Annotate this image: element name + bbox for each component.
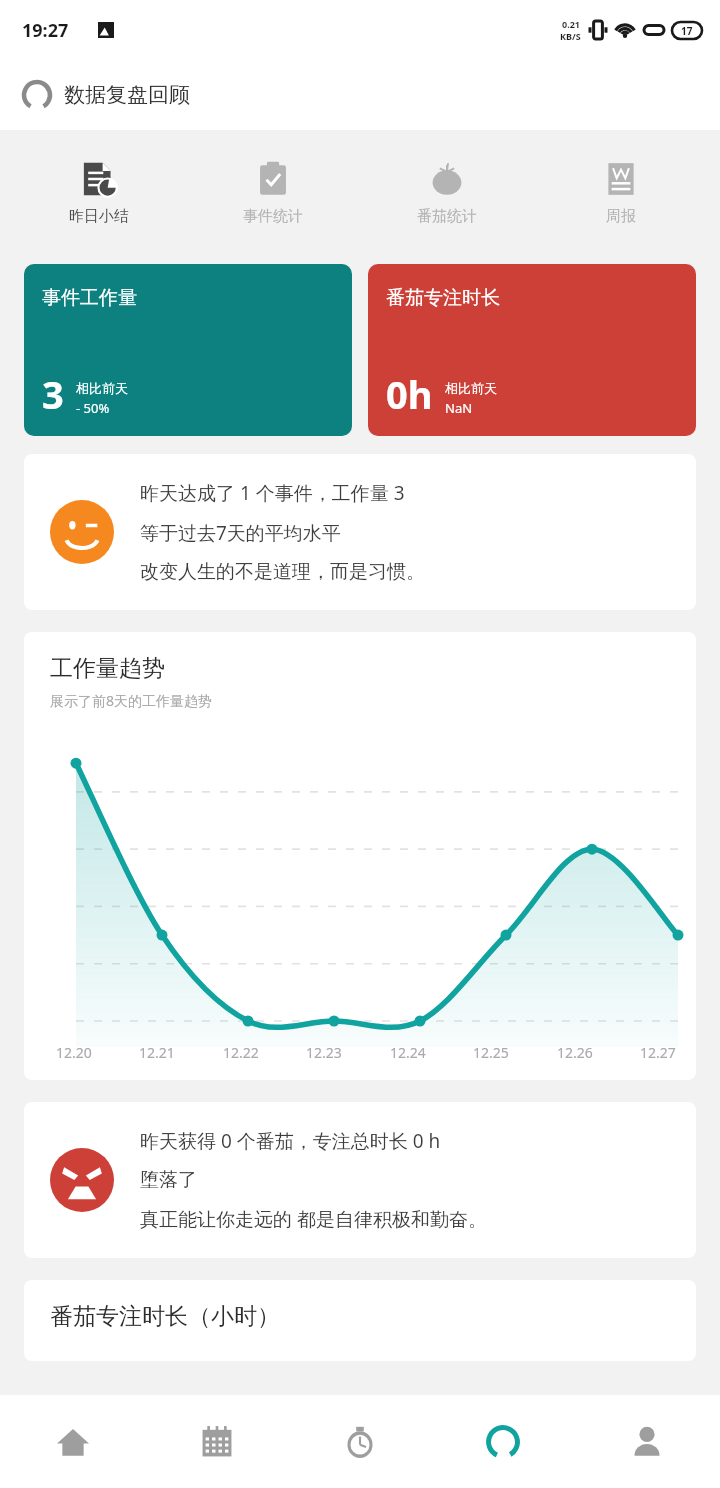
button[interactable]: Profile xyxy=(577,1395,717,1488)
button[interactable]: 昨天达成了 1 个事件，工作量 3 xyxy=(24,454,696,610)
staticText: 12.20 xyxy=(56,1043,92,1062)
staticText: 19:27 xyxy=(22,18,69,43)
staticText: 12.27 xyxy=(640,1043,676,1062)
staticText: 昨天获得 0 个番茄，专注总时长 0 h xyxy=(140,1128,441,1154)
staticText: 番茄统计 xyxy=(417,207,477,226)
staticText: 事件统计 xyxy=(243,207,303,226)
staticText: 17 xyxy=(681,24,693,38)
staticText: 0h xyxy=(386,368,433,420)
staticText: 堕落了 xyxy=(140,1168,197,1192)
staticText: 12.21 xyxy=(139,1043,175,1062)
button[interactable]: Timer xyxy=(290,1395,430,1488)
staticText: 0.21 xyxy=(562,18,580,30)
button[interactable]: 昨天获得 0 个番茄，专注总时长 0 h xyxy=(24,1102,696,1258)
staticText: 12.23 xyxy=(306,1043,342,1062)
button[interactable]: Review xyxy=(433,1395,573,1488)
staticText: KB/S xyxy=(560,30,581,42)
staticText: 周报 xyxy=(606,207,636,226)
staticText: 事件工作量 xyxy=(42,286,137,310)
staticText: 展示了前8天的工作量趋势 xyxy=(50,691,213,710)
button[interactable]: 周报 xyxy=(546,155,696,232)
staticText: 数据复盘回顾 xyxy=(64,82,190,108)
staticText: 相比前天 xyxy=(445,380,497,396)
staticText: NaN xyxy=(445,399,473,417)
staticText: 12.22 xyxy=(223,1043,259,1062)
staticText: 12.26 xyxy=(557,1043,593,1062)
staticText: 番茄专注时长 xyxy=(386,286,500,310)
button[interactable]: Home xyxy=(3,1395,143,1488)
button[interactable]: 事件统计 xyxy=(198,155,348,232)
button[interactable]: 工作量趋势 xyxy=(24,632,696,1080)
staticText: 番茄专注时长（小时） xyxy=(50,1302,280,1331)
staticText: 12.25 xyxy=(473,1043,509,1062)
staticText: 昨日小结 xyxy=(69,207,129,226)
button[interactable]: Calendar xyxy=(147,1395,287,1488)
staticText: 12.24 xyxy=(390,1043,426,1062)
staticText: 真正能让你走远的 都是自律积极和勤奋。 xyxy=(140,1206,487,1232)
button[interactable]: 昨日小结 xyxy=(24,155,174,232)
staticText: 改变人生的不是道理，而是习惯。 xyxy=(140,560,425,584)
staticText: 相比前天 xyxy=(76,380,128,396)
staticText: 工作量趋势 xyxy=(50,654,165,683)
button[interactable]: 番茄统计 xyxy=(372,155,522,232)
staticText: - 50% xyxy=(76,399,110,417)
staticText: 3 xyxy=(42,368,64,420)
staticText: 等于过去7天的平均水平 xyxy=(140,520,341,546)
button[interactable]: 事件工作量 xyxy=(24,264,352,436)
button[interactable]: 番茄专注时长（小时） xyxy=(24,1280,696,1361)
button[interactable]: 番茄专注时长 xyxy=(368,264,696,436)
staticText: 昨天达成了 1 个事件，工作量 3 xyxy=(140,480,405,506)
